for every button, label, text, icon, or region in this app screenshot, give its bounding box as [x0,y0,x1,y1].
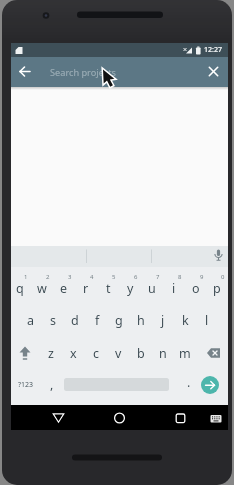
button[interactable]: d [65,311,85,329]
staticText: m [179,345,191,362]
staticText: u [148,280,156,297]
button[interactable]: x [63,344,83,362]
button[interactable]: ?123 [13,378,39,392]
staticText: 4 [90,273,94,281]
staticText: g [115,312,123,329]
staticText: p [213,280,221,297]
staticText: r [83,280,89,297]
button[interactable]: i [164,279,184,297]
staticText: c [93,345,100,362]
staticText: 3 [68,273,72,281]
staticText: . [187,374,191,390]
staticText: 7 [156,273,160,281]
staticText: t [106,280,111,297]
staticText: x [70,345,77,362]
staticText: k [182,312,189,329]
staticText: a [27,312,35,329]
staticText: , [50,376,54,392]
button[interactable]: b [131,344,151,362]
staticText: o [192,280,200,297]
button[interactable] [48,407,69,428]
button[interactable]: g [109,311,129,329]
button[interactable]: u [142,279,162,297]
staticText: b [137,345,145,362]
button[interactable]: v [108,344,128,362]
button[interactable]: w [32,279,52,297]
button[interactable] [15,61,35,83]
staticText: l [205,312,209,329]
staticText: e [60,280,68,297]
button[interactable]: , [46,376,58,392]
staticText: 5 [112,273,116,281]
button[interactable]: y [120,279,140,297]
staticText: 9 [200,273,204,281]
staticText: v [115,345,122,362]
button[interactable] [203,61,223,83]
staticText: h [137,312,145,329]
staticText: Search projects [50,66,116,79]
button[interactable] [201,376,219,394]
staticText: 1 [24,273,28,281]
staticText: d [71,312,79,329]
button[interactable]: p [207,279,227,297]
button[interactable]: h [131,311,151,329]
button[interactable]: k [175,311,195,329]
button[interactable]: f [87,311,107,329]
button[interactable]: n [153,344,173,362]
staticText: 8 [178,273,182,281]
staticText: y [127,280,134,297]
staticText: f [95,312,100,329]
staticText: j [161,312,165,329]
staticText: w [37,280,47,297]
staticText: s [50,312,56,329]
staticText: n [159,345,167,362]
button[interactable]: c [86,344,106,362]
button[interactable]: z [41,344,61,362]
button[interactable] [15,344,35,362]
button[interactable]: m [175,344,195,362]
button[interactable]: t [98,279,118,297]
staticText: q [16,280,24,297]
button[interactable]: s [43,311,63,329]
staticText: 2 [46,273,50,281]
staticText: i [172,280,176,297]
button[interactable]: e [54,279,74,297]
button[interactable] [203,344,224,362]
button[interactable]: j [153,311,173,329]
button[interactable] [209,413,223,425]
button[interactable]: q [10,279,30,297]
staticText: 6 [134,273,138,281]
button[interactable]: r [76,279,96,297]
staticText: 12:27 [204,45,222,55]
staticText: z [48,345,54,362]
staticText: ?123 [18,380,34,390]
button[interactable]: a [21,311,41,329]
button[interactable] [170,407,191,428]
staticText: 0 [221,273,225,281]
button[interactable] [109,407,130,428]
button[interactable]: l [197,311,217,329]
button[interactable]: o [186,279,206,297]
button[interactable]: . [183,374,195,390]
